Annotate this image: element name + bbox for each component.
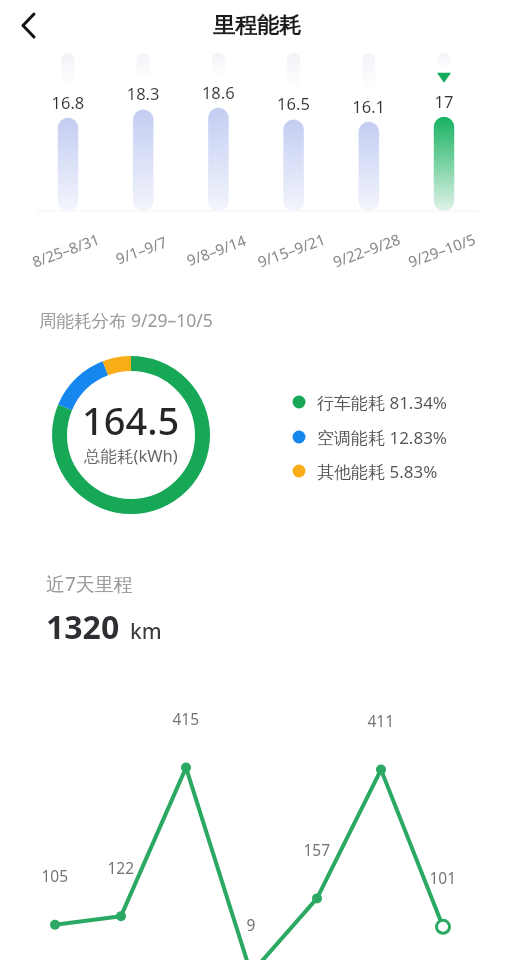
button[interactable]: [6, 3, 50, 47]
